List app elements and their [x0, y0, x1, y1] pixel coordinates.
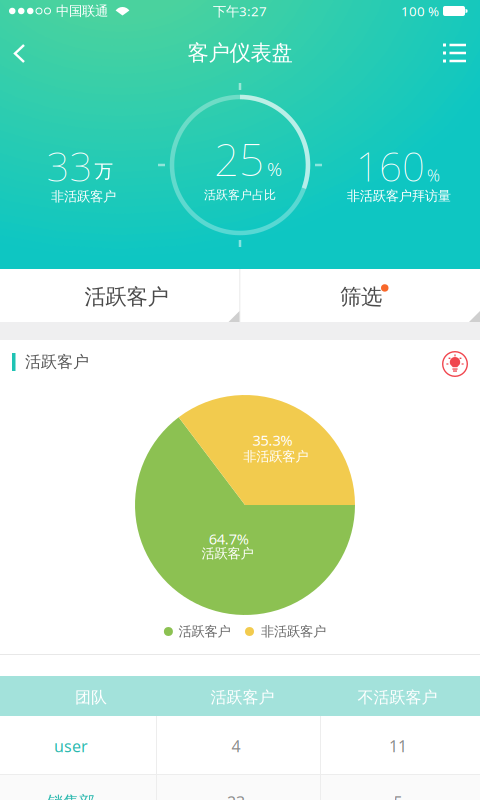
staticText: 33: [46, 139, 92, 192]
staticText: 4: [231, 735, 240, 757]
staticText: 活跃客户: [202, 545, 254, 562]
staticText: 筛选: [340, 284, 382, 310]
staticText: 25: [214, 130, 264, 188]
staticText: 中国联通: [56, 3, 108, 19]
staticText: 非活跃客户拜访量: [347, 188, 451, 204]
staticText: 下午3:27: [213, 2, 267, 20]
staticText: 160: [356, 139, 425, 192]
staticText: 活跃客户: [84, 284, 168, 310]
staticText: %: [267, 156, 282, 181]
staticText: 非活跃客户: [261, 623, 326, 640]
button[interactable]: 活跃客户: [0, 269, 239, 322]
staticText: 活跃客户: [210, 688, 274, 707]
staticText: user: [54, 735, 88, 757]
staticText: 团队: [75, 688, 107, 707]
staticText: 5: [393, 791, 402, 800]
staticText: 非活跃客户: [51, 188, 116, 205]
staticText: %: [427, 165, 440, 186]
button[interactable]: 返回: [0, 22, 37, 74]
staticText: 销售部: [47, 792, 95, 800]
staticText: 万: [94, 160, 113, 183]
staticText: 客户仪表盘: [187, 40, 292, 66]
button[interactable]: 销售部: [0, 775, 480, 800]
staticText: 不活跃客户: [357, 688, 437, 707]
button[interactable]: 提示: [436, 345, 474, 383]
staticText: 活跃客户占比: [204, 188, 276, 202]
button[interactable]: user: [0, 716, 480, 774]
button[interactable]: 列表: [433, 22, 480, 73]
staticText: 35.3%: [252, 430, 292, 450]
staticText: 100 %: [401, 2, 439, 20]
staticText: 活跃客户: [25, 352, 89, 372]
staticText: 23: [227, 791, 245, 800]
staticText: 11: [389, 735, 407, 757]
staticText: 64.7%: [209, 529, 249, 549]
button[interactable]: 筛选: [240, 269, 480, 322]
staticText: 活跃客户: [178, 623, 230, 640]
staticText: 非活跃客户: [243, 448, 308, 465]
